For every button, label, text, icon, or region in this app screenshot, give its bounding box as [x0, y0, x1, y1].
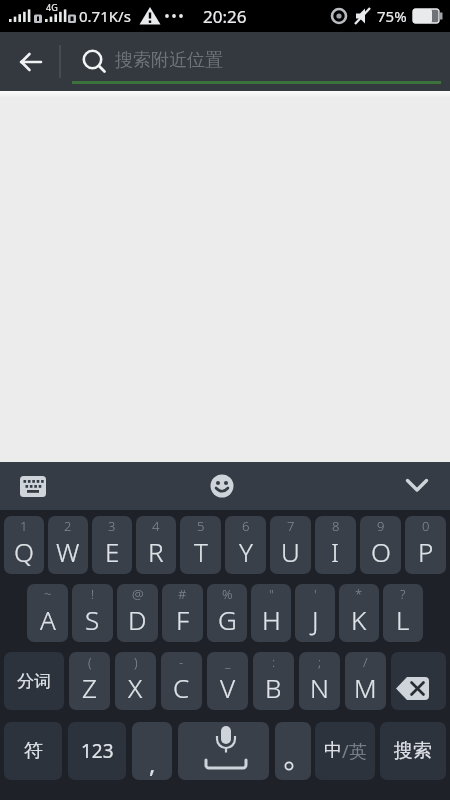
button[interactable]: 搜索附近位置	[61, 32, 450, 91]
button[interactable]: /	[345, 652, 386, 710]
staticText: 2	[64, 517, 72, 535]
button[interactable]: :	[253, 652, 294, 710]
staticText: C	[173, 670, 190, 705]
button[interactable]: 1	[4, 516, 44, 574]
button[interactable]: 6	[225, 516, 266, 574]
staticText: U	[281, 534, 300, 569]
button[interactable]: 中	[315, 722, 375, 780]
staticText: 搜索附近位置	[115, 49, 223, 72]
staticText: N	[310, 670, 329, 705]
button[interactable]: )	[115, 652, 156, 710]
staticText: W	[56, 534, 80, 569]
button[interactable]: -	[161, 652, 202, 710]
staticText: L	[396, 602, 410, 637]
staticText: 3	[108, 517, 116, 535]
button[interactable]: ?	[383, 584, 423, 642]
staticText: Y	[239, 534, 253, 569]
staticText: 75%	[377, 6, 407, 26]
staticText: !	[91, 585, 95, 603]
staticText: H	[262, 602, 281, 637]
staticText: I	[331, 534, 340, 569]
staticText: -	[179, 653, 184, 671]
button[interactable]: !	[72, 584, 113, 642]
button[interactable]: #	[162, 584, 203, 642]
staticText: D	[128, 602, 147, 637]
button[interactable]: 9	[360, 516, 401, 574]
staticText: *	[355, 585, 363, 603]
staticText: /	[363, 653, 368, 671]
staticText: ,	[149, 747, 156, 780]
button[interactable]: ;	[299, 652, 340, 710]
staticText: )	[134, 653, 138, 671]
staticText: S	[85, 602, 100, 637]
staticText: _	[225, 653, 231, 671]
staticText: Q	[14, 534, 34, 569]
staticText: 20:26	[203, 5, 247, 28]
staticText: T	[194, 534, 208, 569]
button[interactable]: _	[207, 652, 248, 710]
staticText: 7	[287, 517, 295, 535]
staticText: @	[132, 585, 144, 603]
button[interactable]: 分词	[4, 652, 64, 710]
staticText: 5	[197, 517, 205, 535]
button[interactable]: ,	[132, 722, 172, 780]
button[interactable]	[275, 722, 311, 780]
button[interactable]: 7	[270, 516, 311, 574]
staticText: /英	[342, 739, 367, 764]
staticText: B	[265, 670, 282, 705]
button[interactable]: *	[339, 584, 379, 642]
staticText: '	[314, 585, 317, 603]
staticText: 1	[20, 517, 28, 535]
button[interactable]: '	[295, 584, 335, 642]
staticText: 0.71K/s	[79, 6, 131, 26]
button[interactable]	[0, 32, 56, 91]
button[interactable]: 0	[405, 516, 446, 574]
staticText: :	[272, 653, 276, 671]
staticText: O	[371, 534, 391, 569]
staticText: P	[418, 534, 434, 569]
button[interactable]: %	[207, 584, 247, 642]
staticText: ~	[44, 585, 52, 603]
button[interactable]: 符	[4, 722, 62, 780]
staticText: A	[40, 602, 56, 637]
staticText: ?	[400, 585, 406, 603]
staticText: #	[178, 585, 187, 603]
staticText: 4	[152, 517, 160, 535]
staticText: K	[351, 602, 367, 637]
staticText: 4G	[46, 1, 58, 13]
staticText: V	[220, 670, 236, 705]
staticText: 6	[242, 517, 250, 535]
button[interactable]	[391, 652, 446, 710]
button[interactable]	[8, 468, 58, 504]
button[interactable]: 搜索	[380, 722, 446, 780]
button[interactable]: (	[69, 652, 110, 710]
staticText: "	[269, 585, 274, 603]
button[interactable]: 2	[48, 516, 88, 574]
button[interactable]	[178, 722, 269, 780]
staticText: 搜索	[394, 739, 432, 763]
staticText: (	[88, 653, 92, 671]
staticText: R	[148, 534, 164, 569]
staticText: G	[218, 602, 237, 637]
button[interactable]	[197, 468, 247, 504]
button[interactable]: "	[251, 584, 291, 642]
button[interactable]: 8	[315, 516, 356, 574]
staticText: E	[105, 534, 120, 569]
button[interactable]	[392, 468, 442, 504]
button[interactable]: 4	[136, 516, 176, 574]
staticText: %	[222, 585, 233, 603]
staticText: 9	[377, 517, 385, 535]
staticText: M	[354, 670, 377, 705]
button[interactable]: @	[117, 584, 158, 642]
staticText: 符	[24, 739, 43, 763]
button[interactable]: ~	[27, 584, 68, 642]
staticText: Z	[82, 670, 97, 705]
button[interactable]: 3	[92, 516, 132, 574]
staticText: 中	[324, 739, 342, 762]
button[interactable]: 5	[180, 516, 221, 574]
staticText: J	[312, 602, 319, 637]
button[interactable]: 123	[68, 722, 126, 780]
staticText: 8	[332, 517, 340, 535]
staticText: X	[128, 670, 143, 705]
staticText: F	[176, 602, 190, 637]
